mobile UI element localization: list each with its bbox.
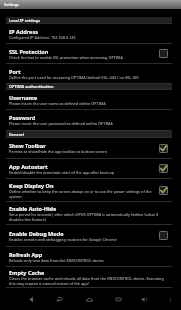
staticText: App Autostart [9,163,48,170]
button[interactable]: Checked [159,186,168,195]
button[interactable]: Home [82,292,96,306]
staticText: IP Address [9,28,38,35]
button[interactable]: IP Address [0,24,181,43]
staticText: Set a period (in seconds), after which O… [9,212,168,222]
staticText: Reloads only new data from the KNXCONTRO… [9,258,104,263]
button[interactable]: Enable Debug Mode [0,225,181,246]
button[interactable]: Keep Display On [0,179,181,201]
staticText: Clears the browser cache and reloads all… [9,276,168,286]
staticText: Please insert the user name as defined w… [9,101,106,106]
staticText: Enable Debug Mode [9,230,64,237]
button[interactable]: Unchecked [159,49,168,58]
staticText: Local IP settings [9,18,41,23]
button[interactable]: Unchecked [159,231,168,240]
button[interactable]: Refresh App [0,247,181,266]
button[interactable]: Back [24,292,38,306]
staticText: Port [9,68,21,75]
staticText: Settings [4,2,19,7]
staticText: Enable/disable the automatic start of th… [9,170,115,175]
staticText: Password [9,114,36,121]
staticText: Refresh App [9,251,43,258]
staticText: Username [9,94,38,101]
button[interactable]: Volume [137,292,151,306]
staticText: Check the box to enable SSL protection w… [9,55,123,60]
staticText: Keep Display On [9,182,54,189]
button[interactable]: Enable Auto-Hide [0,202,181,224]
button[interactable]: Show Toolbar [0,138,181,158]
staticText: Permits to show/hide the app toolbar at … [9,149,107,154]
button[interactable]: SSL Protection [0,44,181,63]
button[interactable]: Empty Cache [0,267,181,287]
staticText: Empty Cache [9,269,45,276]
staticText: OPTIMA authentication [9,84,54,89]
staticText: Show Toolbar [9,142,46,149]
button[interactable]: Username [0,90,181,109]
button[interactable]: App Autostart [0,159,181,178]
staticText: Enable Auto-Hide [9,205,57,212]
staticText: General [9,132,24,137]
staticText: Configured IP Address: 192.168.5.145 [9,35,76,40]
button[interactable]: Recent apps [111,292,125,306]
button[interactable]: Password [0,110,181,130]
button[interactable]: More options [163,292,177,306]
button[interactable]: Checked [159,164,168,173]
button[interactable]: Port [0,64,181,83]
staticText: Enables remote web debugging routines fo… [9,237,117,242]
button[interactable]: Back arrow [52,292,66,306]
staticText: SSL Protection [9,48,49,55]
button[interactable]: Checked [159,144,168,153]
staticText: Define the port used for accessing OPTIM… [9,75,139,80]
staticText: Please insert the user password as defin… [9,121,113,126]
staticText: Define whether to keep the screen always… [9,189,155,199]
